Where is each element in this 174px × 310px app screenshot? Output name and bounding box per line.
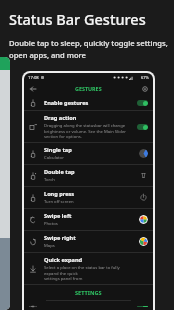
staticText: 17:08 <box>28 75 39 81</box>
button[interactable]: Gesture vibrate <box>24 303 153 310</box>
staticText: Quick expand <box>44 256 83 264</box>
button[interactable]: Back <box>27 83 38 94</box>
staticText: Torch <box>44 177 55 183</box>
staticText: Status Bar Gestures <box>9 9 146 29</box>
button[interactable]: Swipe right <box>24 231 153 252</box>
staticText: Dragging along the statusbar will change… <box>44 123 126 139</box>
button[interactable]: Toggle <box>137 306 148 307</box>
staticText: Maps <box>44 243 55 249</box>
button[interactable]: Drag action <box>24 111 153 142</box>
staticText: Calculator <box>44 155 64 161</box>
staticText: open apps, and more <box>9 50 86 60</box>
staticText: Photos <box>44 221 58 227</box>
button[interactable]: Double tap <box>24 165 153 186</box>
staticText: GESTURES <box>75 85 102 92</box>
button[interactable]: MAPS <box>139 237 148 246</box>
staticText: SETTINGS <box>75 289 102 297</box>
button[interactable]: POWER <box>139 193 148 202</box>
button[interactable]: Single tap <box>24 143 153 164</box>
staticText: Drag action <box>44 114 77 122</box>
button[interactable]: PHOTOS <box>139 215 148 224</box>
button[interactable]: Toggle <box>137 124 148 130</box>
button[interactable]: Quick expand <box>24 253 153 284</box>
staticText: Double tap <box>44 168 75 176</box>
staticText: Single tap <box>44 146 72 154</box>
staticText: Turn off screen <box>44 199 74 205</box>
button[interactable]: Swipe left <box>24 209 153 230</box>
button[interactable]: CALC <box>139 149 148 158</box>
staticText: 67% <box>141 75 149 80</box>
staticText: Enable gestures <box>44 99 89 107</box>
staticText: Swipe left <box>44 212 72 220</box>
staticText: Double tap to sleep, quickly toggle sett… <box>9 38 168 48</box>
button[interactable]: Toggle <box>137 100 148 106</box>
staticText: Swipe right <box>44 234 76 242</box>
button[interactable]: Enable gestures <box>24 95 153 110</box>
button[interactable]: Long press <box>24 187 153 208</box>
button[interactable]: TORCH <box>139 171 148 180</box>
staticText: Long press <box>44 190 75 198</box>
button[interactable]: Settings <box>139 83 150 94</box>
staticText: Select a place on the status bar to full… <box>44 265 135 281</box>
